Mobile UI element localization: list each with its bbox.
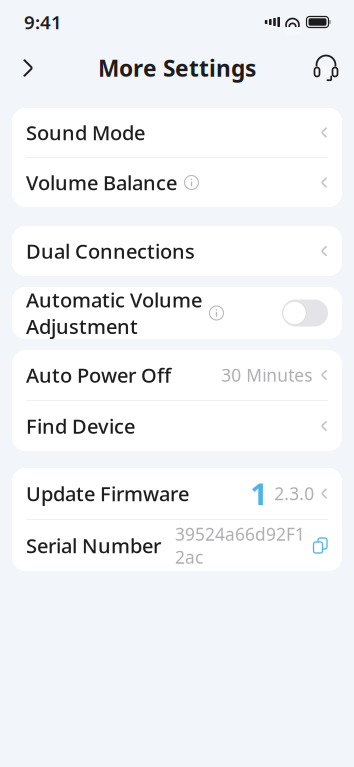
staticText: Automatic Volume Adjustment xyxy=(26,286,202,339)
button[interactable]: Sound Mode xyxy=(12,108,342,157)
staticText: 1 xyxy=(250,473,268,514)
button[interactable]: Volume Balance xyxy=(12,158,342,207)
staticText: 9:41 xyxy=(24,10,62,34)
staticText: 30 Minutes xyxy=(221,363,312,386)
staticText: Serial Number xyxy=(26,532,161,559)
button[interactable]: Back xyxy=(8,48,48,88)
staticText: Find Device xyxy=(26,413,135,439)
button[interactable]: Update Firmware xyxy=(12,468,342,519)
button[interactable]: Headset xyxy=(306,48,346,88)
button[interactable]: Auto Power Off xyxy=(12,350,342,400)
button[interactable]: Find Device xyxy=(12,401,342,451)
staticText: Sound Mode xyxy=(26,119,145,146)
staticText: Volume Balance xyxy=(26,169,177,196)
staticText: 39524a66d92F12ac xyxy=(175,522,305,568)
staticText: 2.3.0 xyxy=(274,482,314,505)
staticText: Auto Power Off xyxy=(26,362,171,388)
button[interactable]: Automatic Volume Adjustment xyxy=(12,287,342,339)
staticText: More Settings xyxy=(98,53,256,83)
staticText: Update Firmware xyxy=(26,480,189,507)
button[interactable]: Serial Number xyxy=(12,520,342,571)
button[interactable]: Dual Connections xyxy=(12,226,342,276)
staticText: Dual Connections xyxy=(26,238,195,264)
